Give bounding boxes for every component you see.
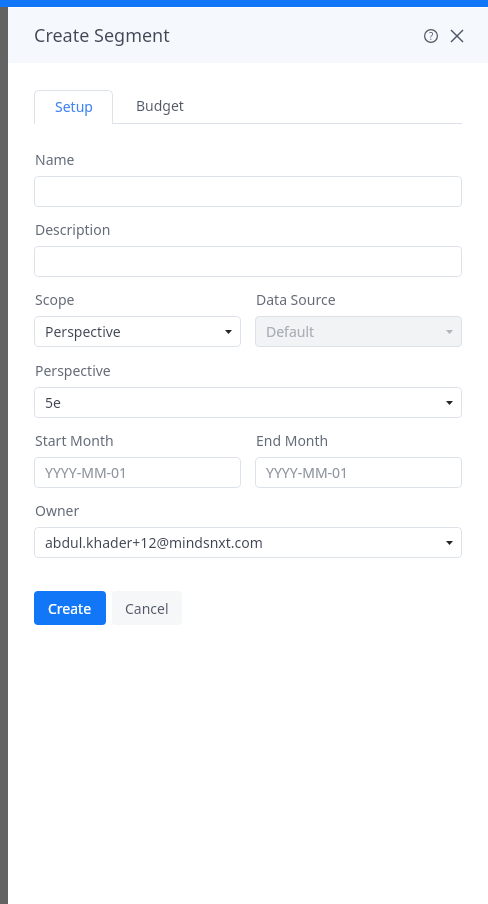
- button[interactable]: abdul.khader+12@mindsnxt.com: [34, 527, 462, 558]
- staticText: Budget: [136, 96, 184, 115]
- staticText: Start Month: [35, 431, 114, 450]
- staticText: Create Segment: [34, 23, 170, 48]
- button[interactable]: Create: [34, 591, 106, 625]
- button[interactable]: YYYY-MM-01: [34, 457, 241, 488]
- button[interactable]: [34, 176, 462, 207]
- staticText: Description: [35, 220, 111, 239]
- staticText: Perspective: [35, 361, 111, 380]
- button[interactable]: Default: [255, 316, 462, 347]
- staticText: 5e: [45, 393, 61, 412]
- button[interactable]: [34, 246, 462, 277]
- button[interactable]: YYYY-MM-01: [255, 457, 462, 488]
- staticText: ?: [429, 29, 434, 43]
- staticText: Scope: [35, 290, 75, 309]
- staticText: Setup: [55, 97, 93, 116]
- button[interactable]: Perspective: [34, 316, 241, 347]
- button[interactable]: Cancel: [112, 591, 182, 625]
- staticText: Data Source: [256, 290, 336, 309]
- staticText: Create: [48, 599, 92, 618]
- button[interactable]: Help: [418, 23, 444, 49]
- staticText: Default: [266, 322, 315, 341]
- button[interactable]: Setup: [34, 90, 113, 124]
- staticText: YYYY-MM-01: [266, 463, 349, 482]
- staticText: Perspective: [45, 322, 121, 341]
- button[interactable]: 5e: [34, 387, 462, 418]
- staticText: Cancel: [125, 599, 169, 618]
- button[interactable]: Close: [444, 23, 470, 49]
- staticText: Owner: [35, 501, 80, 520]
- staticText: YYYY-MM-01: [45, 463, 128, 482]
- staticText: End Month: [256, 431, 329, 450]
- button[interactable]: Budget: [113, 90, 206, 123]
- staticText: abdul.khader+12@mindsnxt.com: [45, 533, 263, 552]
- staticText: Name: [35, 150, 75, 169]
